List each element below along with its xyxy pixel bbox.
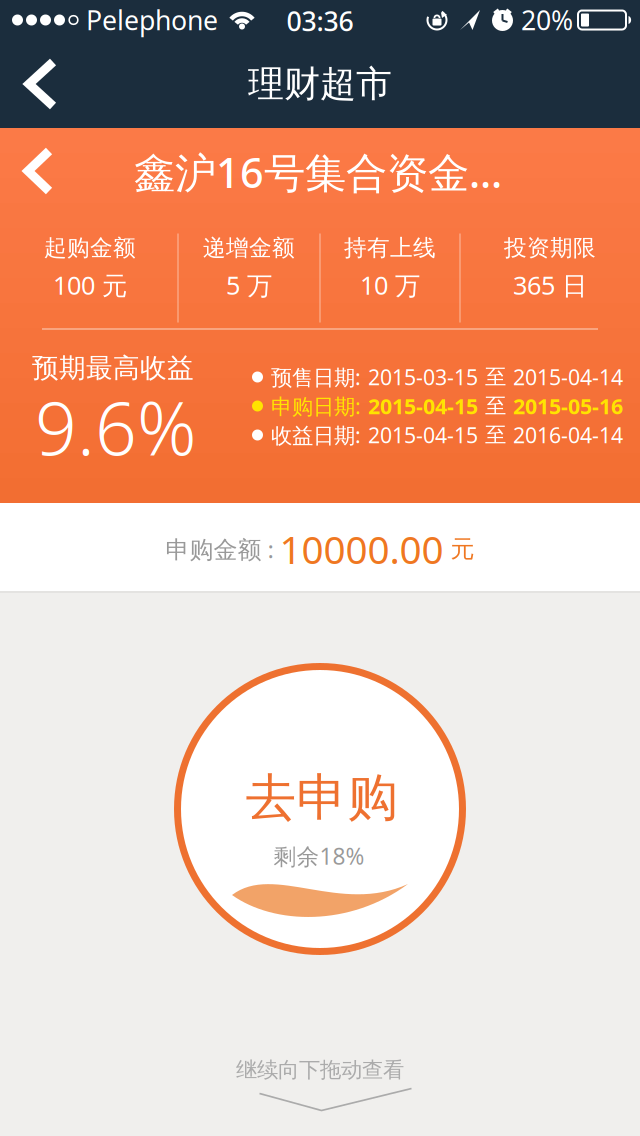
- staticText: 2015-03-15: [368, 363, 478, 391]
- staticText: 元: [443, 534, 474, 564]
- staticText: 2015-05-16: [513, 392, 623, 420]
- staticText: 20%: [521, 2, 573, 38]
- staticText: 03:36: [286, 3, 353, 39]
- staticText: 2016-04-14: [513, 421, 623, 449]
- staticText: 剩余18%: [273, 841, 364, 871]
- staticText: 鑫沪16号集合资金...: [134, 145, 502, 199]
- staticText: 365 日: [513, 268, 587, 302]
- staticText: 继续向下拖动查看: [236, 1057, 404, 1083]
- staticText: 2015-04-14: [513, 363, 623, 391]
- staticText: 投资期限: [504, 234, 596, 262]
- staticText: 5 万: [226, 268, 272, 302]
- staticText: 预期最高收益: [32, 352, 194, 384]
- staticText: 收益日期:: [271, 421, 361, 449]
- staticText: 100 元: [53, 268, 127, 302]
- staticText: 预售日期:: [271, 363, 361, 391]
- staticText: 起购金额: [44, 234, 136, 262]
- staticText: 10 万: [360, 268, 420, 302]
- staticText: 递增金额: [203, 234, 295, 262]
- staticText: 去申购: [245, 767, 398, 829]
- staticText: Pelephone: [86, 2, 218, 38]
- staticText: 2015-04-15: [368, 421, 478, 449]
- button[interactable]: 去申购: [174, 663, 466, 955]
- button[interactable]: Back: [0, 129, 76, 213]
- staticText: 10000.00: [279, 523, 443, 575]
- staticText: 理财超市: [248, 62, 392, 106]
- staticText: 申购日期:: [271, 392, 361, 420]
- staticText: 申购金额 :: [165, 533, 279, 565]
- staticText: 至: [485, 422, 506, 448]
- staticText: 至: [485, 364, 506, 390]
- staticText: 至: [485, 393, 506, 419]
- staticText: 9.6%: [35, 378, 197, 476]
- button[interactable]: Back: [0, 40, 80, 128]
- staticText: 持有上线: [344, 234, 436, 262]
- staticText: 2015-04-15: [368, 392, 478, 420]
